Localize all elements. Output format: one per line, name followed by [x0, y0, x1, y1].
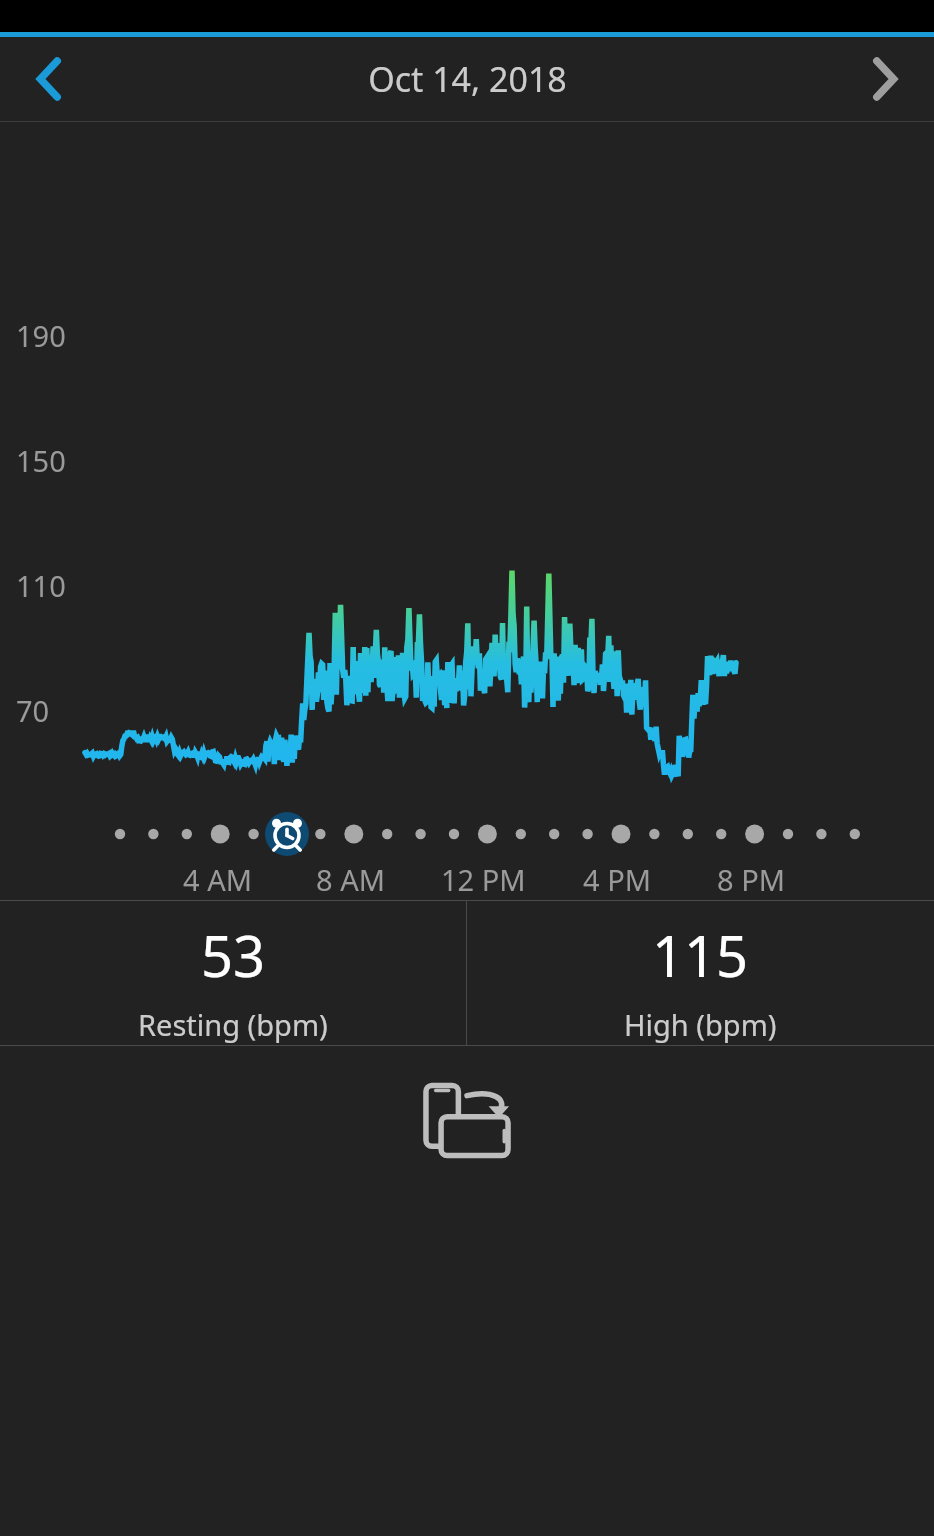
staticText: 53 [201, 917, 266, 993]
staticText: 110 [16, 566, 66, 605]
staticText: 8 PM [717, 860, 785, 899]
staticText: Resting (bpm) [138, 1005, 328, 1044]
staticText: Oct 14, 2018 [368, 56, 567, 102]
staticText: 4 PM [583, 860, 651, 899]
staticText: 8 AM [316, 860, 385, 899]
staticText: 70 [16, 691, 50, 730]
button[interactable]: Previous day [0, 37, 100, 121]
button[interactable]: Next day [834, 37, 934, 121]
staticText: 190 [16, 316, 66, 355]
staticText: 12 PM [441, 860, 526, 899]
staticText: 4 AM [183, 860, 252, 899]
staticText: 115 [652, 917, 749, 993]
staticText: 150 [16, 441, 66, 480]
staticText: High (bpm) [624, 1005, 777, 1044]
button[interactable]: 115 [467, 901, 934, 1045]
button[interactable]: 53 [0, 901, 466, 1045]
button[interactable]: Rotate device for full screen chart [407, 1066, 527, 1186]
